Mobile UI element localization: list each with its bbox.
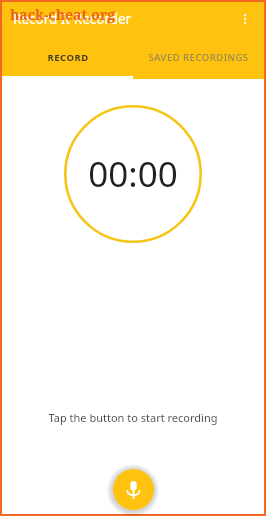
staticText: SAVED RECORDINGS [148,51,249,64]
staticText: 00:00 [88,150,178,198]
button[interactable]: SAVED RECORDINGS [133,36,264,79]
button[interactable]: Start recording [113,469,154,510]
button[interactable]: More options [232,6,258,32]
staticText: hack-cheat.org [10,5,116,24]
staticText: Tap the button to start recording [2,410,264,425]
staticText: Record It Recorder [13,10,132,28]
staticText: RECORD [47,51,89,64]
button[interactable]: RECORD [2,36,133,79]
